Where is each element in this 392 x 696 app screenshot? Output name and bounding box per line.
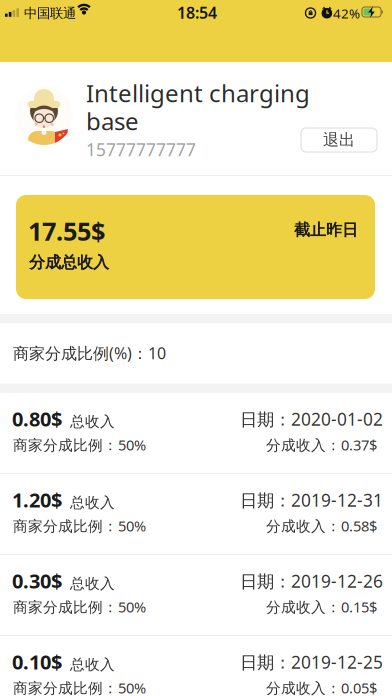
staticText: 中国联通 (24, 5, 76, 21)
staticText: 截止昨日 (294, 220, 358, 240)
staticText: 0.30$ (12, 567, 62, 594)
staticText: 商家分成比例：50% (13, 597, 146, 616)
staticText: 日期：2019-12-26 (240, 569, 383, 592)
staticText: 18:54 (177, 2, 217, 23)
staticText: 商家分成比例：50% (13, 516, 146, 535)
button[interactable]: 退出 (301, 128, 377, 152)
staticText: 商家分成比例(%)：10 (13, 342, 166, 364)
staticText: 0.10$ (12, 648, 62, 675)
staticText: 商家分成比例：50% (13, 678, 146, 696)
staticText: 商家分成比例：50% (13, 435, 146, 454)
staticText: 1.20$ (12, 486, 62, 513)
staticText: 总收入 (70, 412, 115, 430)
staticText: 日期：2019-12-25 (240, 650, 383, 673)
staticText: 0.80$ (12, 405, 62, 432)
staticText: 分成收入：0.15$ (266, 597, 377, 616)
staticText: 总收入 (70, 655, 115, 673)
staticText: 分成收入：0.58$ (266, 516, 377, 535)
staticText: 15777777777 (86, 138, 196, 161)
staticText: 分成总收入 (29, 252, 109, 272)
staticText: 42% (333, 4, 360, 22)
staticText: 分成收入：0.05$ (266, 678, 377, 696)
staticText: Intelligent charging (86, 77, 310, 109)
staticText: base (86, 105, 139, 137)
staticText: 总收入 (70, 574, 115, 592)
staticText: 总收入 (70, 493, 115, 511)
staticText: 日期：2019-12-31 (240, 488, 383, 511)
staticText: 分成收入：0.37$ (266, 435, 377, 454)
staticText: 退出 (323, 130, 355, 150)
staticText: 17.55$ (28, 214, 105, 248)
staticText: 日期：2020-01-02 (240, 407, 383, 430)
